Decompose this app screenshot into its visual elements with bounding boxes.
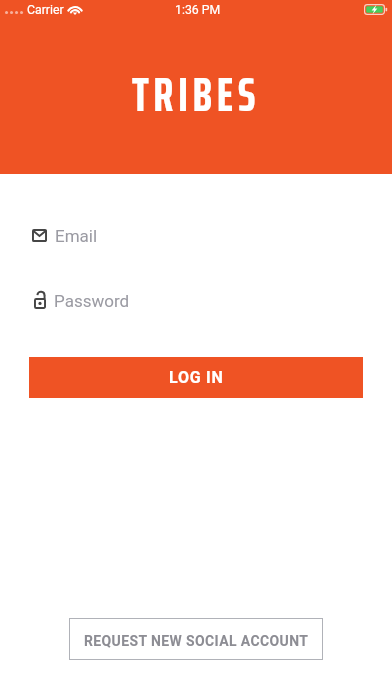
staticText: REQUEST NEW SOCIAL ACCOUNT — [84, 633, 309, 649]
staticText: Password — [54, 291, 130, 311]
staticText: LOG IN — [169, 368, 224, 387]
button[interactable]: Email — [32, 223, 360, 249]
other: Password — [34, 292, 46, 309]
button[interactable]: REQUEST NEW SOCIAL ACCOUNT — [69, 618, 323, 660]
staticText: Carrier — [27, 3, 64, 17]
staticText: Email — [55, 226, 98, 246]
other: Email — [32, 229, 47, 242]
button[interactable]: LOG IN — [29, 357, 363, 398]
staticText: TRIBES — [0, 57, 392, 133]
staticText: 1:36 PM — [175, 3, 221, 17]
button[interactable]: Password — [34, 288, 360, 314]
